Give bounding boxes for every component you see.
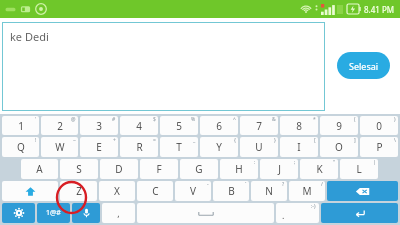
staticText: @	[71, 116, 76, 123]
staticText: Q	[17, 140, 25, 154]
button[interactable]: :-)	[276, 203, 319, 223]
staticText: $	[153, 116, 156, 123]
staticText: L	[356, 162, 362, 176]
staticText: 6	[216, 119, 222, 133]
staticText: S	[76, 162, 82, 176]
staticText: ^	[233, 116, 236, 123]
button[interactable]: Space	[137, 203, 274, 223]
staticText: 8	[296, 119, 302, 133]
button[interactable]: C	[137, 181, 173, 201]
button[interactable]: 4	[120, 116, 158, 135]
button[interactable]: A	[21, 159, 58, 179]
staticText: E	[96, 140, 102, 154]
staticText: G	[195, 162, 203, 176]
button[interactable]: 8	[280, 116, 318, 135]
button[interactable]: F	[140, 159, 178, 179]
button[interactable]: Settings	[2, 203, 35, 223]
button[interactable]: U	[240, 137, 278, 157]
button[interactable]: 5	[160, 116, 198, 135]
staticText: !	[35, 137, 37, 144]
button[interactable]: N	[251, 181, 287, 201]
staticText: D	[115, 162, 123, 176]
button[interactable]: E	[80, 137, 118, 157]
staticText: :-)	[311, 203, 316, 210]
staticText: 3	[96, 119, 102, 133]
button[interactable]: O	[320, 137, 358, 157]
button[interactable]: Selesai	[337, 52, 390, 79]
staticText: ?	[282, 181, 285, 188]
button[interactable]: Shift	[2, 181, 58, 201]
staticText: ,	[117, 207, 120, 219]
staticText: N	[265, 184, 273, 198]
staticText: =	[153, 137, 156, 144]
staticText: 1@#	[46, 208, 61, 218]
button[interactable]: R	[120, 137, 158, 157]
staticText: Z	[76, 184, 82, 198]
staticText: X	[114, 184, 120, 198]
button[interactable]: Enter	[321, 203, 398, 223]
button[interactable]: 1@#	[37, 203, 70, 223]
staticText: }	[274, 137, 276, 144]
staticText: |	[373, 159, 376, 166]
button[interactable]: ke Dedi	[2, 22, 325, 111]
staticText: V	[190, 184, 196, 198]
staticText: \	[394, 137, 396, 144]
button[interactable]: 0	[360, 116, 398, 135]
staticText: )	[394, 116, 396, 123]
staticText: A	[36, 162, 43, 176]
staticText: .	[282, 209, 285, 221]
staticText: "	[333, 159, 336, 166]
button[interactable]: 3	[80, 116, 118, 135]
button[interactable]: T	[160, 137, 198, 157]
button[interactable]: X	[99, 181, 135, 201]
staticText: Selesai	[349, 60, 379, 72]
button[interactable]: S	[60, 159, 98, 179]
button[interactable]: L	[340, 159, 378, 179]
staticText: [	[314, 137, 316, 144]
staticText: :	[254, 159, 256, 166]
button[interactable]: V	[175, 181, 211, 201]
button[interactable]: 6	[200, 116, 238, 135]
staticText: 1	[18, 119, 24, 133]
button[interactable]: B	[213, 181, 249, 201]
button[interactable]: W	[41, 137, 78, 157]
staticText: M	[302, 184, 312, 198]
staticText: +	[113, 137, 116, 144]
button[interactable]: H	[220, 159, 258, 179]
staticText: 8.41 PM	[364, 4, 395, 15]
button[interactable]: 7	[240, 116, 278, 135]
staticText: 4	[136, 119, 142, 133]
staticText: 7	[256, 119, 262, 133]
button[interactable]: D	[100, 159, 138, 179]
staticText: &	[272, 116, 276, 123]
button[interactable]: 1	[2, 116, 39, 135]
staticText: Y	[216, 140, 222, 154]
staticText: F	[156, 162, 162, 176]
staticText: P	[376, 140, 383, 154]
button[interactable]: M	[289, 181, 325, 201]
button[interactable]: 9	[320, 116, 358, 135]
button[interactable]: Z	[60, 181, 97, 201]
staticText: '	[35, 116, 37, 123]
staticText: K	[316, 162, 323, 176]
staticText: J	[278, 162, 281, 176]
button[interactable]: I	[280, 137, 318, 157]
staticText: %	[191, 116, 196, 123]
staticText: 9	[336, 119, 342, 133]
button[interactable]: G	[180, 159, 218, 179]
staticText: ke Dedi	[10, 29, 49, 44]
staticText: B	[228, 184, 235, 198]
staticText: (	[354, 116, 356, 123]
button[interactable]: ,	[102, 203, 135, 223]
button[interactable]: J	[260, 159, 298, 179]
button[interactable]: K	[300, 159, 338, 179]
staticText: O	[335, 140, 343, 154]
button[interactable]: Y	[200, 137, 238, 157]
button[interactable]: Q	[2, 137, 39, 157]
button[interactable]: P	[360, 137, 398, 157]
staticText: `	[245, 181, 247, 188]
staticText: ~	[73, 137, 76, 144]
button[interactable]: Backspace	[327, 181, 398, 201]
button[interactable]: Voice input	[72, 203, 100, 223]
button[interactable]: 2	[41, 116, 78, 135]
